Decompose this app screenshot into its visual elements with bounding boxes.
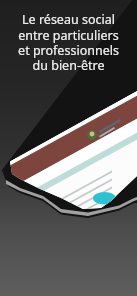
staticText: Le réseau social entre particuliers et p…	[6, 11, 131, 73]
